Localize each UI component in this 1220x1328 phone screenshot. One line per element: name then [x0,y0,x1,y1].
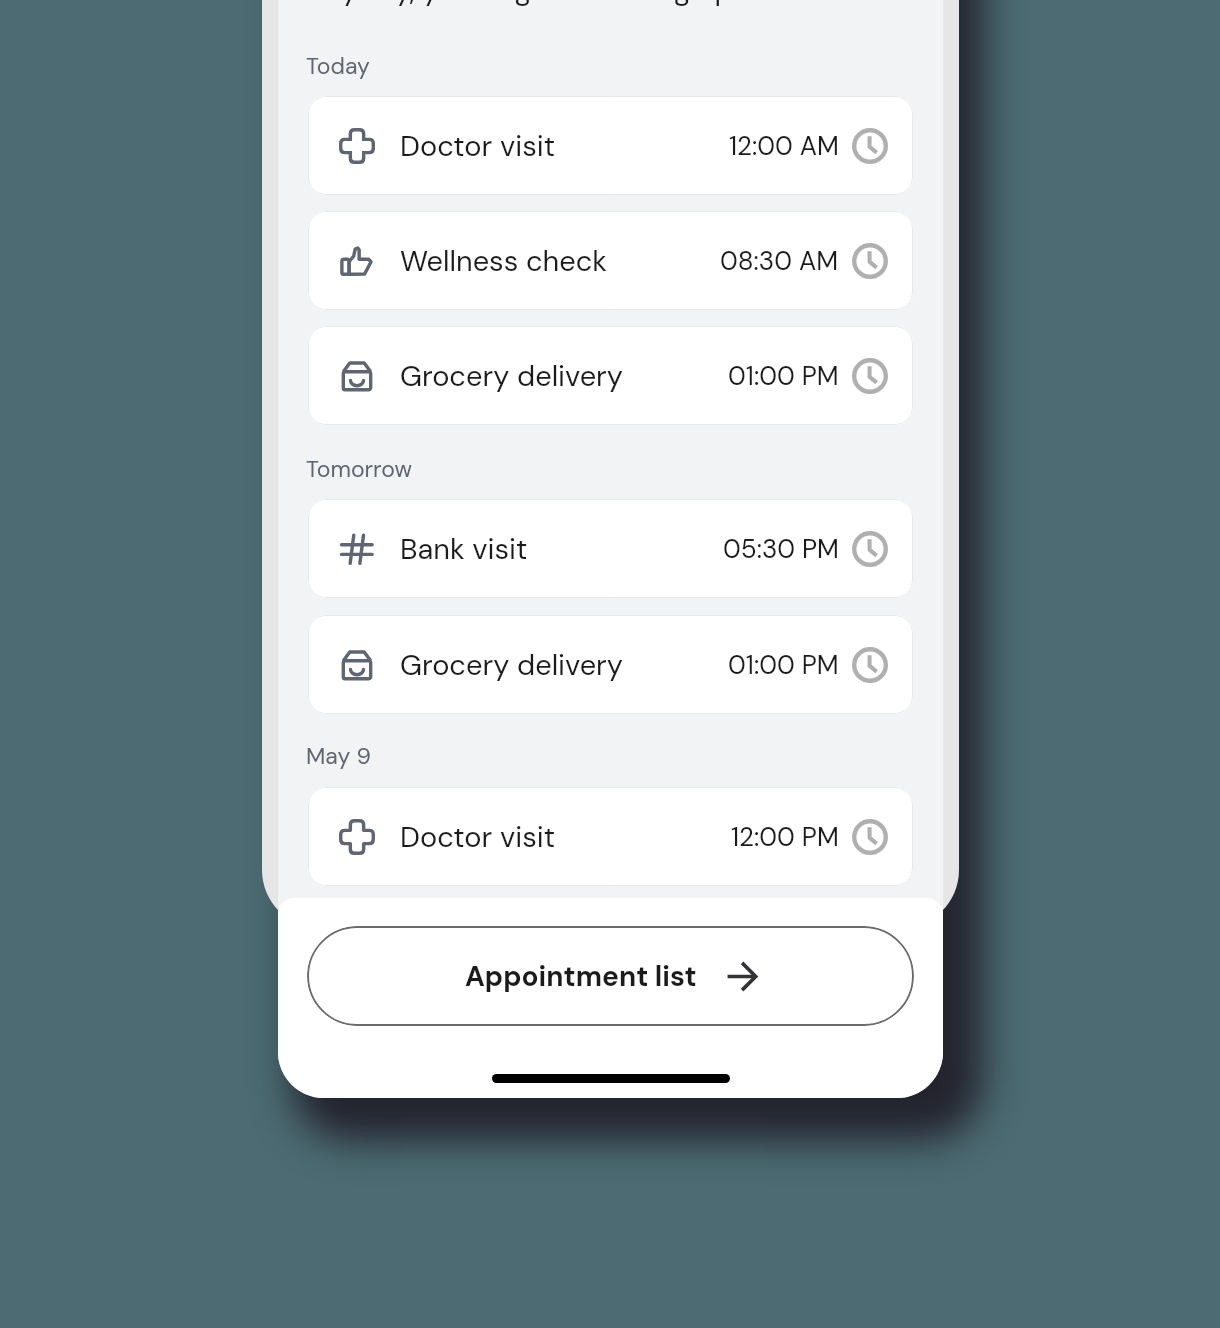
staticText: Hey Jay, you've got 3 coming up [306,0,733,9]
staticText: 08:30 AM [720,244,839,278]
staticText: 12:00 PM [731,820,839,854]
staticText: Grocery delivery [400,357,623,395]
staticText: Today [306,51,370,81]
staticText: Grocery delivery [400,646,623,684]
staticText: May 9 [306,741,371,771]
staticText: 01:00 PM [728,359,839,393]
button[interactable]: Grocery delivery [308,326,913,425]
staticText: Tomorrow [306,454,412,484]
staticText: 05:30 PM [723,532,839,566]
button[interactable]: Doctor visit [308,787,913,886]
button[interactable]: Grocery delivery [308,615,913,714]
button[interactable]: Bank visit [308,499,913,598]
button[interactable]: Wellness check [308,211,913,310]
staticText: 12:00 AM [729,129,839,163]
staticText: Bank visit [400,530,528,568]
staticText: 01:00 PM [728,648,839,682]
staticText: Doctor visit [400,127,556,165]
staticText: Wellness check [400,242,607,280]
button[interactable]: Appointment list [307,926,914,1026]
other: Open appointment list [727,962,756,991]
button[interactable]: Doctor visit [308,96,913,195]
staticText: Doctor visit [400,818,556,856]
staticText: Appointment list [465,958,697,994]
